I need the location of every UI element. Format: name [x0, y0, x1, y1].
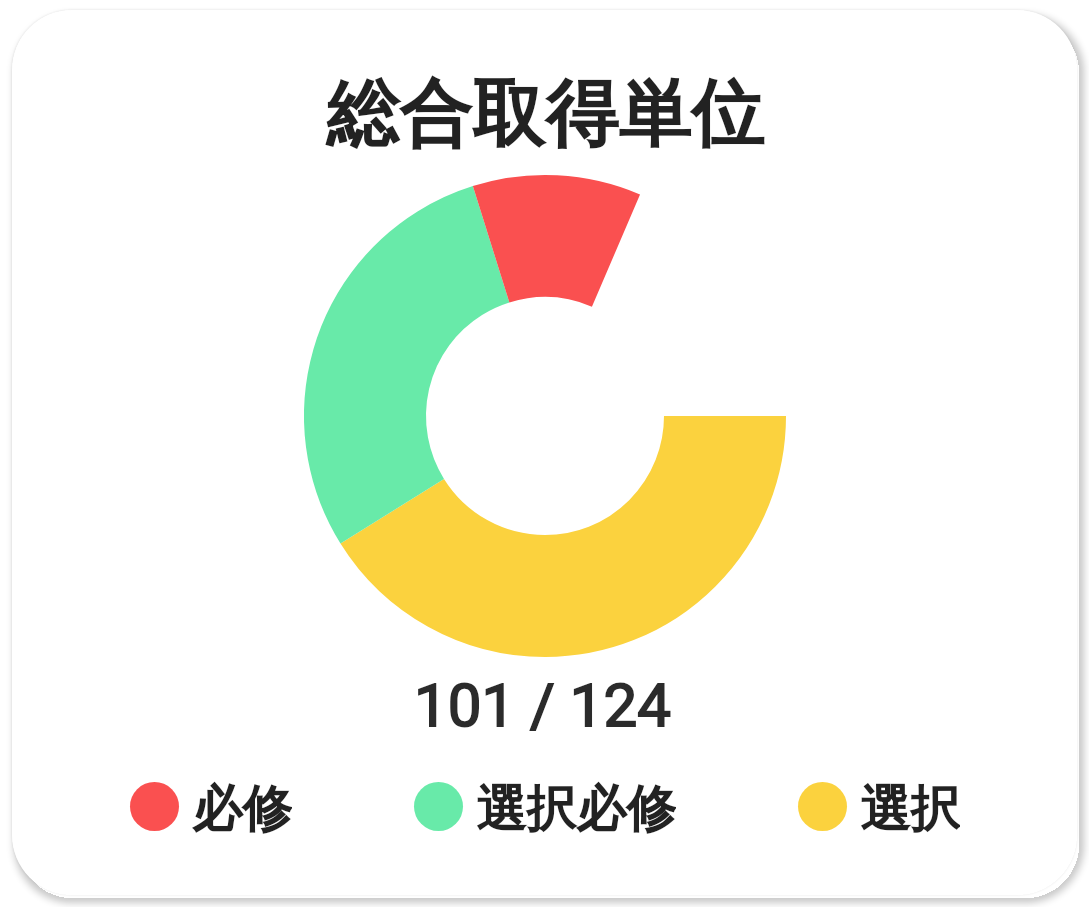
staticText: 必修 [192, 778, 292, 834]
button[interactable]: 選択必修 [414, 778, 676, 834]
staticText: 選択必修 [476, 778, 676, 834]
button[interactable] [12, 10, 1077, 895]
button[interactable]: 必修 [130, 778, 292, 834]
button[interactable]: 選択 [798, 778, 960, 834]
staticText: 選択 [860, 778, 960, 834]
staticText: 101 / 124 [414, 670, 671, 740]
staticText: 総合取得単位 [326, 69, 764, 161]
